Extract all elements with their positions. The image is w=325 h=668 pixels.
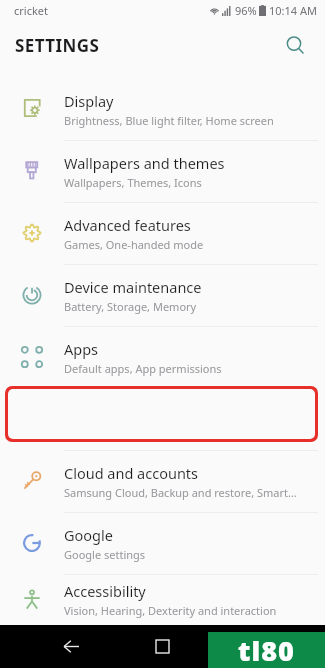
staticText: 10:14 AM — [269, 3, 317, 18]
staticText: Vision, Hearing, Dexterity and interacti… — [64, 603, 277, 618]
button[interactable]: Google — [0, 512, 325, 574]
staticText: Google settings — [64, 547, 146, 562]
button[interactable]: Search — [275, 25, 315, 65]
staticText: Cloud and accounts — [64, 463, 199, 483]
staticText: Samsung Cloud, Backup and restore, Smart… — [64, 485, 297, 500]
staticText: Google — [64, 525, 113, 545]
button[interactable]: Lock screen and security — [0, 388, 325, 450]
staticText: Games, One-handed mode — [64, 237, 204, 252]
button[interactable]: Cloud and accounts — [0, 450, 325, 512]
button[interactable]: Accessibility — [0, 574, 325, 625]
button[interactable]: Wallpapers and themes — [0, 140, 325, 202]
staticText: Advanced features — [64, 215, 191, 235]
button[interactable]: Apps — [0, 326, 325, 388]
staticText: Device maintenance — [64, 277, 202, 297]
staticText: Wallpapers and themes — [64, 153, 225, 173]
button[interactable]: Display — [0, 78, 325, 140]
staticText: tl80 — [238, 632, 295, 668]
staticText: Default apps, App permissions — [64, 361, 222, 376]
staticText: Display — [64, 91, 114, 111]
staticText: Battery, Storage, Memory — [64, 299, 197, 314]
staticText: Apps — [64, 339, 99, 359]
button[interactable]: Back — [48, 625, 92, 668]
staticText: Accessibility — [64, 581, 146, 601]
button[interactable]: Device maintenance — [0, 264, 325, 326]
staticText: Brightness, Blue light filter, Home scre… — [64, 113, 274, 128]
button[interactable]: Recents — [140, 625, 184, 668]
button[interactable]: Advanced features — [0, 202, 325, 264]
staticText: Wallpapers, Themes, Icons — [64, 175, 202, 190]
staticText: cricket — [14, 3, 48, 18]
staticText: SETTINGS — [15, 34, 100, 57]
staticText: 96% — [235, 3, 257, 18]
